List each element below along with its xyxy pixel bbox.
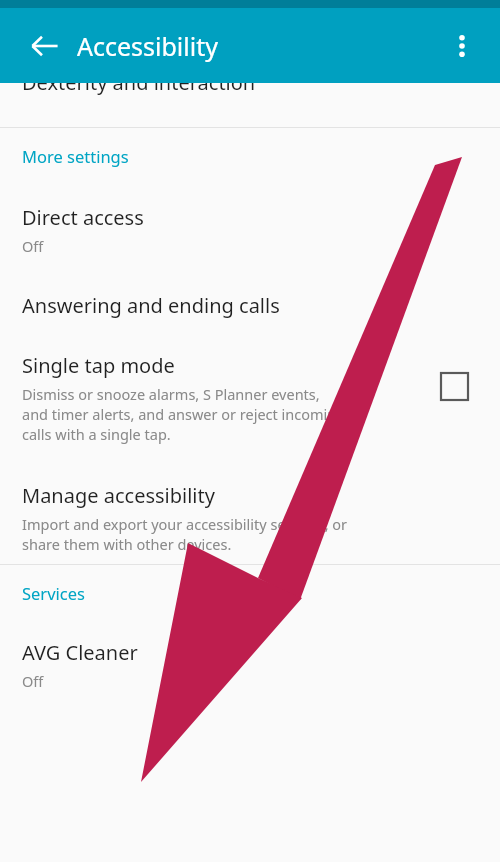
button[interactable]: Back (20, 21, 70, 71)
button[interactable]: Manage accessibility (0, 466, 500, 564)
button[interactable]: Single tap mode checkbox (441, 373, 468, 400)
staticText: Import and export your accessibility set… (22, 514, 348, 534)
button[interactable]: More options (438, 22, 486, 70)
button[interactable]: AVG Cleaner (0, 621, 500, 701)
button[interactable]: Answering and ending calls (0, 270, 500, 336)
staticText: Off (22, 671, 44, 691)
staticText: Accessibility (77, 29, 218, 63)
staticText: share them with other devices. (22, 534, 232, 554)
button[interactable]: Single tap mode (0, 336, 500, 466)
staticText: Dexterity and interaction (22, 83, 256, 96)
staticText: calls with a single tap. (22, 424, 171, 444)
staticText: Services (22, 582, 85, 604)
staticText: Off (22, 236, 44, 256)
staticText: Answering and ending calls (22, 292, 280, 319)
staticText: AVG Cleaner (22, 639, 138, 666)
staticText: Single tap mode (22, 352, 175, 379)
staticText: Direct access (22, 204, 144, 231)
staticText: and timer alerts, and answer or reject i… (22, 404, 346, 424)
button[interactable]: Direct access (0, 184, 500, 270)
staticText: Manage accessibility (22, 482, 215, 509)
button[interactable]: Dexterity and interaction (0, 83, 500, 127)
staticText: More settings (22, 145, 129, 167)
staticText: Dismiss or snooze alarms, S Planner even… (22, 384, 320, 404)
